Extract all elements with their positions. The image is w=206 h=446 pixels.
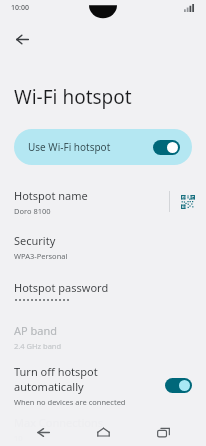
button[interactable]: Hotspot password <box>0 269 206 314</box>
button[interactable]: Share hotspot QR code <box>170 179 206 224</box>
staticText: AP band <box>14 323 58 338</box>
staticText: Max Connections <box>14 415 104 430</box>
button[interactable]: Use Wi-Fi hotspot <box>14 129 192 165</box>
staticText: Turn off hotspot <box>14 364 98 379</box>
button[interactable]: Home <box>86 419 120 445</box>
staticText: Hotspot password <box>14 280 109 295</box>
staticText: Hotspot name <box>14 188 88 203</box>
staticText: WPA3-Personal <box>14 251 68 261</box>
button[interactable]: Recent apps <box>146 419 180 445</box>
staticText: 2.4 GHz band <box>14 341 62 351</box>
button[interactable]: Hotspot name <box>0 179 169 224</box>
staticText: Doro 8100 <box>14 206 51 216</box>
staticText: Security <box>14 233 56 248</box>
staticText: When no devices are connected <box>14 397 126 407</box>
button[interactable]: Security <box>0 224 206 269</box>
staticText: automatically <box>14 379 84 394</box>
button[interactable]: Max Connections <box>0 411 206 446</box>
button[interactable]: AP band <box>0 314 206 359</box>
staticText: 10:00 <box>11 3 29 13</box>
staticText: Wi-Fi hotspot <box>14 84 132 110</box>
staticText: Use Wi-Fi hotspot <box>28 140 153 154</box>
button[interactable]: Back <box>26 419 60 445</box>
button[interactable]: Turn off hotspot <box>0 359 206 411</box>
button[interactable]: Back <box>7 24 37 54</box>
